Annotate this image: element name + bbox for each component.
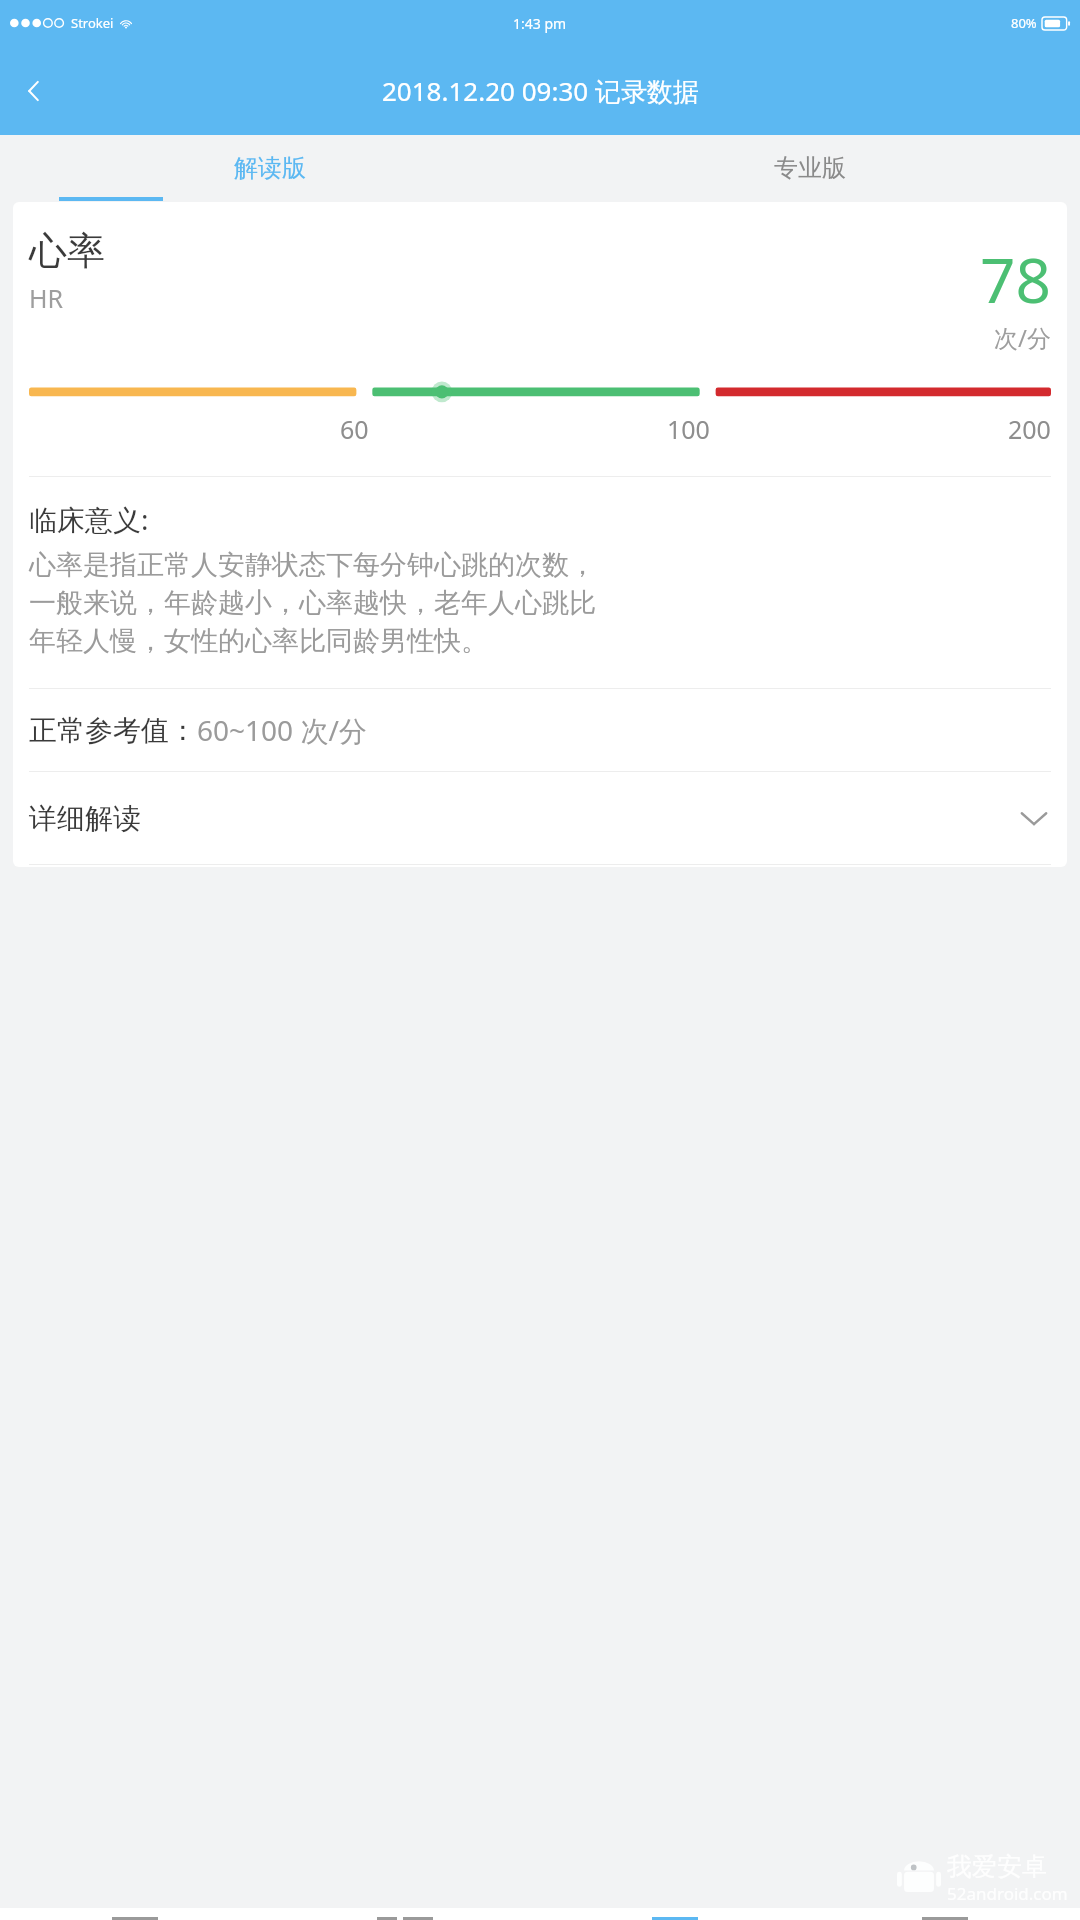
button[interactable]: Tab 4 — [810, 1908, 1080, 1920]
staticText: 52android.com — [947, 1882, 1068, 1905]
staticText: 心率 — [29, 227, 105, 275]
button[interactable]: Back — [6, 63, 62, 119]
staticText: 详细解读 — [29, 801, 141, 836]
button[interactable]: 正常参考值： — [13, 689, 1067, 771]
staticText: Strokei — [71, 14, 114, 32]
staticText: 100 — [667, 412, 710, 446]
staticText: 解读版 — [234, 153, 306, 183]
button[interactable]: 详细解读 — [13, 772, 1067, 864]
staticText: 78 — [980, 237, 1051, 321]
staticText: 正常参考值： — [29, 713, 197, 748]
button[interactable]: Tab 3 — [540, 1908, 810, 1920]
staticText: 我爱安卓 — [947, 1851, 1047, 1882]
button[interactable]: Tab 1 — [0, 1908, 270, 1920]
staticText: 次/分 — [994, 321, 1051, 354]
other: Expand — [1017, 801, 1051, 835]
staticText: 临床意义: — [29, 500, 149, 538]
staticText: 2018.12.20 09:30 记录数据 — [382, 73, 699, 109]
staticText: 60 — [340, 412, 369, 446]
staticText: 1:43 pm — [513, 14, 567, 33]
staticText: 60~100 次/分 — [197, 711, 367, 749]
button[interactable]: Tab 2 — [270, 1908, 540, 1920]
staticText: 80% — [1011, 14, 1037, 32]
button[interactable]: 专业版 — [540, 135, 1080, 201]
button[interactable]: 解读版 — [0, 135, 540, 201]
staticText: 200 — [1008, 412, 1051, 446]
staticText: 心率是指正常人安静状态下每分钟心跳的次数， 一般来说，年龄越小，心率越快，老年人… — [29, 548, 596, 658]
staticText: HR — [29, 281, 64, 315]
staticText: 专业版 — [774, 153, 846, 183]
